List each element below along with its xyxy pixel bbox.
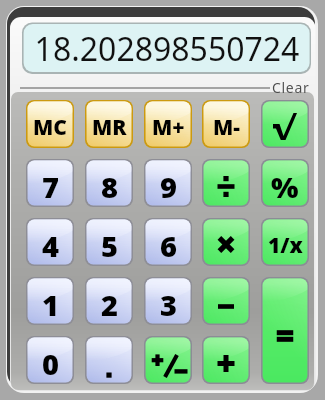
staticText: MC bbox=[33, 113, 67, 142]
staticText: 2 bbox=[101, 285, 118, 324]
button[interactable]: 5 bbox=[85, 218, 133, 266]
staticText: 4 bbox=[42, 226, 59, 265]
button[interactable]: 7 bbox=[26, 159, 74, 207]
button[interactable]: Decimal point bbox=[85, 336, 133, 384]
staticText: 0 bbox=[42, 344, 59, 383]
button[interactable]: 1/x bbox=[261, 218, 309, 266]
button[interactable]: 1 bbox=[26, 277, 74, 325]
button[interactable]: Divide bbox=[202, 159, 250, 207]
button[interactable]: 9 bbox=[144, 159, 192, 207]
staticText: 9 bbox=[160, 167, 177, 206]
staticText: MR bbox=[92, 113, 127, 142]
staticText: 7 bbox=[42, 167, 59, 206]
button[interactable]: 4 bbox=[26, 218, 74, 266]
staticText: Clear bbox=[272, 78, 310, 95]
staticText: % bbox=[271, 167, 299, 206]
button[interactable]: Equals bbox=[261, 277, 309, 384]
staticText: 18.202898550724 bbox=[24, 27, 310, 71]
button[interactable]: 8 bbox=[85, 159, 133, 207]
button[interactable]: MC bbox=[26, 100, 74, 148]
button[interactable]: 3 bbox=[144, 277, 192, 325]
button[interactable]: Clear bbox=[272, 78, 316, 95]
staticText: 1 bbox=[42, 285, 59, 324]
button[interactable]: Square root bbox=[261, 100, 309, 148]
staticText: 3 bbox=[160, 285, 177, 324]
staticText: 6 bbox=[160, 226, 177, 265]
button[interactable]: MR bbox=[85, 100, 133, 148]
staticText: 8 bbox=[101, 167, 118, 206]
button[interactable]: % bbox=[261, 159, 309, 207]
button[interactable]: M+ bbox=[144, 100, 192, 148]
button[interactable]: 2 bbox=[85, 277, 133, 325]
button[interactable]: 6 bbox=[144, 218, 192, 266]
button[interactable]: M- bbox=[202, 100, 250, 148]
staticText: 5 bbox=[101, 226, 118, 265]
button[interactable]: Plus or minus bbox=[144, 336, 192, 384]
button[interactable]: Plus bbox=[202, 336, 250, 384]
button[interactable]: Multiply bbox=[202, 218, 250, 266]
button[interactable]: 0 bbox=[26, 336, 74, 384]
button[interactable]: Minus bbox=[202, 277, 250, 325]
staticText: 1/x bbox=[268, 231, 303, 260]
staticText: M- bbox=[213, 113, 240, 142]
staticText: M+ bbox=[152, 113, 185, 142]
